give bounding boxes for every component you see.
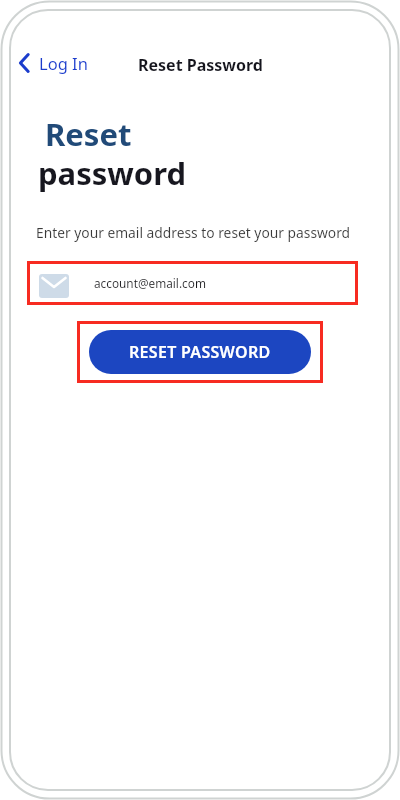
staticText: password <box>38 152 187 194</box>
staticText: account@email.com <box>94 275 206 291</box>
staticText: Reset <box>45 113 132 155</box>
button[interactable]: Log In <box>19 52 88 74</box>
staticText: RESET PASSWORD <box>129 341 271 363</box>
staticText: Enter your email address to reset your p… <box>36 223 351 242</box>
button[interactable]: account@email.com <box>27 261 358 305</box>
staticText: Log In <box>39 52 88 74</box>
staticText: Reset Password <box>138 54 263 76</box>
button[interactable]: RESET PASSWORD <box>89 330 311 374</box>
